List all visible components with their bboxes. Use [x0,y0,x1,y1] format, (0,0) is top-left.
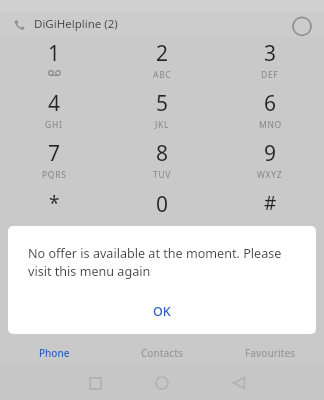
button[interactable]: Contacts [108,335,216,365]
button[interactable]: Phone [0,335,108,365]
staticText: 1 [48,39,61,68]
button[interactable]: Home [151,372,173,394]
button[interactable]: * [0,186,108,222]
staticText: Favourites [245,346,296,360]
button[interactable]: Recents [84,372,106,394]
button[interactable]: 4 [0,86,108,136]
staticText: 0 [156,190,169,219]
staticText: * [49,190,60,216]
button[interactable]: # [216,186,324,222]
staticText: Contacts [141,346,183,360]
staticText: # [264,190,277,216]
staticText: PQRS [42,169,67,181]
button[interactable]: 5 [108,86,216,136]
staticText: JKL [155,119,170,131]
staticText: 9 [264,139,277,168]
staticText: 3 [264,39,277,68]
button[interactable]: 3 [216,36,324,86]
button[interactable]: 8 [108,136,216,186]
staticText: 6 [264,89,277,118]
button[interactable]: 2 [108,36,216,86]
staticText: 7 [48,139,61,168]
staticText: MNO [259,119,282,131]
button[interactable]: Contact info [292,14,312,34]
staticText: 5 [156,89,169,118]
staticText: 8 [156,139,169,168]
staticText: DiGiHelpline (2) [34,16,118,32]
staticText: DEF [261,69,279,81]
staticText: No offer is available at the moment. Ple… [28,245,298,279]
staticText: ABC [153,69,172,81]
staticText: 2 [156,39,169,68]
staticText: WXYZ [257,169,283,181]
button[interactable]: 1 [0,36,108,86]
button[interactable]: OK [137,299,187,324]
button[interactable]: 6 [216,86,324,136]
staticText: GHI [45,119,63,131]
button[interactable]: 7 [0,136,108,186]
staticText: OK [153,303,171,320]
staticText: TUV [153,169,172,181]
button[interactable]: Favourites [216,335,324,365]
button[interactable]: Back [228,372,250,394]
button[interactable]: 0 [108,186,216,222]
staticText: Phone [39,346,70,360]
staticText: 4 [48,89,61,118]
button[interactable]: 9 [216,136,324,186]
